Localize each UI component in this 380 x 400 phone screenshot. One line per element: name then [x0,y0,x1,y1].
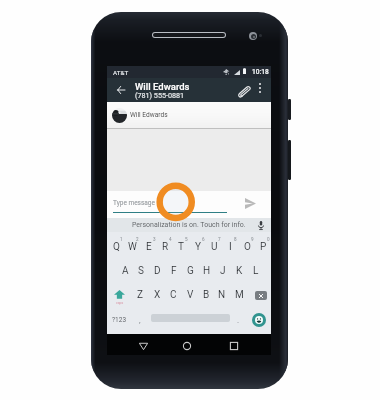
staticText: K [236,265,243,277]
button[interactable]: Emoji keyboard [252,313,266,327]
staticText: caps [116,301,124,305]
button[interactable]: Attach [235,82,253,100]
button[interactable]: 4 [157,235,173,259]
staticText: E [146,241,152,253]
button[interactable]: C [165,283,181,307]
staticText: C [170,289,177,301]
staticText: (781) 555-0881 [135,91,185,99]
button[interactable]: Recent apps [224,336,244,356]
staticText: 1 [120,237,123,242]
button[interactable]: B [198,283,214,307]
staticText: D [154,265,161,277]
button[interactable]: X [149,283,165,307]
staticText: Type message [113,199,155,207]
button[interactable]: 6 [190,235,206,259]
button[interactable]: F [166,259,182,283]
button[interactable]: D [149,259,165,283]
button[interactable]: S [133,259,149,283]
staticText: 9 [251,237,254,242]
staticText: G [187,265,194,277]
button[interactable]: Will Edwards [107,102,271,128]
button[interactable]: V [182,283,198,307]
button[interactable]: 2 [124,235,140,259]
staticText: P [260,241,267,253]
staticText: M [235,289,244,301]
staticText: 8 [234,237,237,242]
staticText: 6 [202,237,205,242]
staticText: S [138,265,144,277]
staticText: Z [137,289,143,301]
staticText: J [220,265,226,277]
button[interactable]: L [248,259,264,283]
button[interactable]: Navigate up [113,82,129,98]
button[interactable]: H [199,259,215,283]
button[interactable]: Z [132,283,148,307]
button[interactable]: Backspace [248,283,273,307]
staticText: 0 [267,237,270,242]
button[interactable]: N [214,283,230,307]
button[interactable]: , [132,308,147,332]
button[interactable]: K [231,259,247,283]
staticText: Y [195,241,202,253]
staticText: Q [113,241,120,253]
staticText: , [139,316,141,325]
button[interactable]: 9 [239,235,255,259]
button[interactable]: Back [133,336,153,356]
button[interactable]: Send [240,193,260,213]
button[interactable]: More options [254,82,266,94]
button[interactable]: A [117,259,133,283]
staticText: 4 [169,237,172,242]
button[interactable]: ?123 [107,308,132,332]
staticText: O [244,241,251,253]
staticText: H [203,265,211,277]
button[interactable]: 0 [255,235,271,259]
staticText: L [253,265,259,277]
staticText: 3 [153,237,156,242]
staticText: X [154,289,161,301]
button[interactable]: J [215,259,231,283]
button[interactable]: Home [177,336,197,356]
staticText: I [229,241,232,253]
staticText: Personalization is on. Touch for info. [132,221,246,229]
button[interactable]: Voice input [254,219,267,232]
staticText: U [211,241,218,253]
staticText: 5 [185,237,188,242]
staticText: Will Edwards [130,111,168,119]
staticText: AT&T [113,69,129,76]
button[interactable]: 1 [108,235,124,259]
button[interactable]: G [182,259,198,283]
staticText: 2 [136,237,139,242]
staticText: A [122,265,129,277]
button[interactable]: 3 [141,235,157,259]
staticText: W [128,241,137,253]
staticText: . [237,316,240,325]
button[interactable]: 8 [222,235,238,259]
staticText: T [178,241,184,253]
staticText: Will Edwards [135,81,190,92]
button[interactable]: M [231,283,247,307]
button[interactable]: 5 [173,235,189,259]
staticText: R [162,241,169,253]
staticText: B [203,289,210,301]
staticText: F [171,265,177,277]
staticText: 10:18 [252,68,269,76]
button[interactable]: Shift [107,283,132,307]
button[interactable]: 7 [206,235,222,259]
staticText: V [187,289,194,301]
staticText: 7 [218,237,221,242]
staticText: ?123 [112,316,127,324]
staticText: N [218,289,226,301]
